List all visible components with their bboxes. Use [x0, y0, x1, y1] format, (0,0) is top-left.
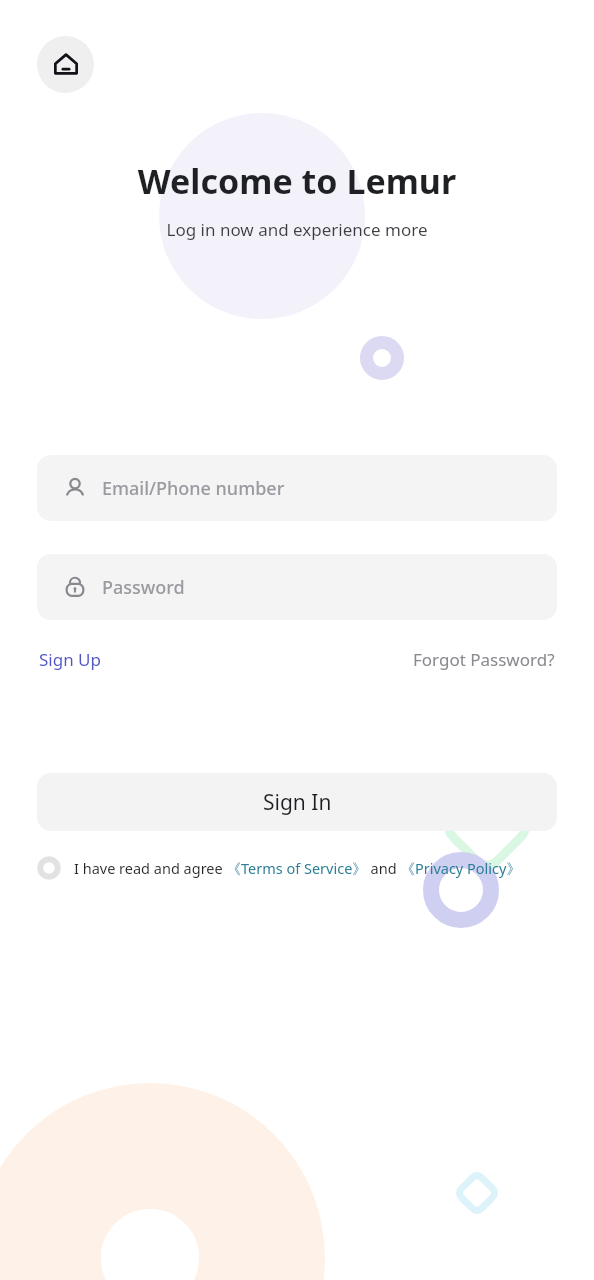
staticText: Password [102, 575, 185, 600]
staticText: Log in now and experience more [0, 218, 594, 241]
button[interactable]: Sign Up [37, 644, 103, 675]
staticText: Email/Phone number [102, 476, 285, 501]
button[interactable]: Home [37, 36, 94, 93]
button[interactable]: Password [37, 554, 557, 620]
staticText: Welcome to Lemur [0, 158, 594, 204]
button[interactable]: I have read and agree 《Terms of Service》… [74, 858, 521, 878]
button[interactable]: Email/Phone number [37, 455, 557, 521]
button[interactable]: Sign In [37, 773, 557, 831]
staticText: Sign Up [39, 648, 101, 671]
button[interactable]: Forgot Password? [411, 644, 557, 675]
button[interactable]: Agree to terms [37, 856, 61, 880]
staticText: I have read and agree 《Terms of Service》… [74, 858, 521, 878]
staticText: Forgot Password? [413, 648, 555, 671]
staticText: Sign In [263, 788, 332, 817]
